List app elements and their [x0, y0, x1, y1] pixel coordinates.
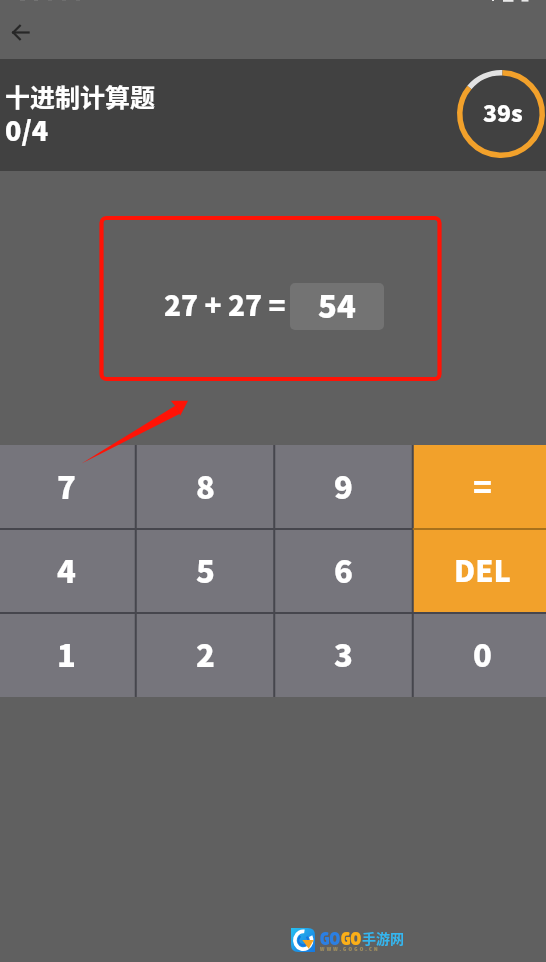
staticText: 4: [57, 547, 76, 592]
staticText: 54: [318, 283, 356, 327]
staticText: =: [473, 463, 492, 508]
button[interactable]: =: [413, 445, 546, 529]
staticText: 7: [57, 463, 76, 508]
button[interactable]: Back: [0, 11, 41, 53]
staticText: 5: [196, 547, 215, 592]
button[interactable]: 4: [0, 529, 136, 613]
staticText: 1: [57, 631, 76, 676]
staticText: DEL: [454, 548, 511, 590]
staticText: GO: [341, 928, 362, 949]
button[interactable]: 3: [274, 613, 413, 697]
staticText: 8: [196, 463, 215, 508]
button[interactable]: 5: [136, 529, 275, 613]
staticText: 39s: [483, 95, 523, 128]
staticText: 6: [334, 547, 353, 592]
staticText: 27 + 27 =: [164, 284, 286, 325]
staticText: GO: [320, 928, 341, 949]
button[interactable]: 0: [413, 613, 546, 697]
button[interactable]: 6: [274, 529, 413, 613]
staticText: 十进制计算题: [5, 78, 156, 114]
staticText: 0: [473, 631, 492, 676]
staticText: 9: [334, 463, 353, 508]
button[interactable]: 2: [136, 613, 275, 697]
staticText: 3: [334, 631, 353, 676]
button[interactable]: 1: [0, 613, 136, 697]
button[interactable]: 9: [274, 445, 413, 529]
staticText: WWW.GOGO.CN: [320, 945, 380, 952]
staticText: 2: [196, 631, 215, 676]
button[interactable]: DEL: [413, 529, 546, 613]
staticText: 手游网: [362, 928, 404, 948]
button[interactable]: 7: [0, 445, 136, 529]
button[interactable]: 8: [136, 445, 275, 529]
staticText: 0/4: [5, 110, 49, 149]
